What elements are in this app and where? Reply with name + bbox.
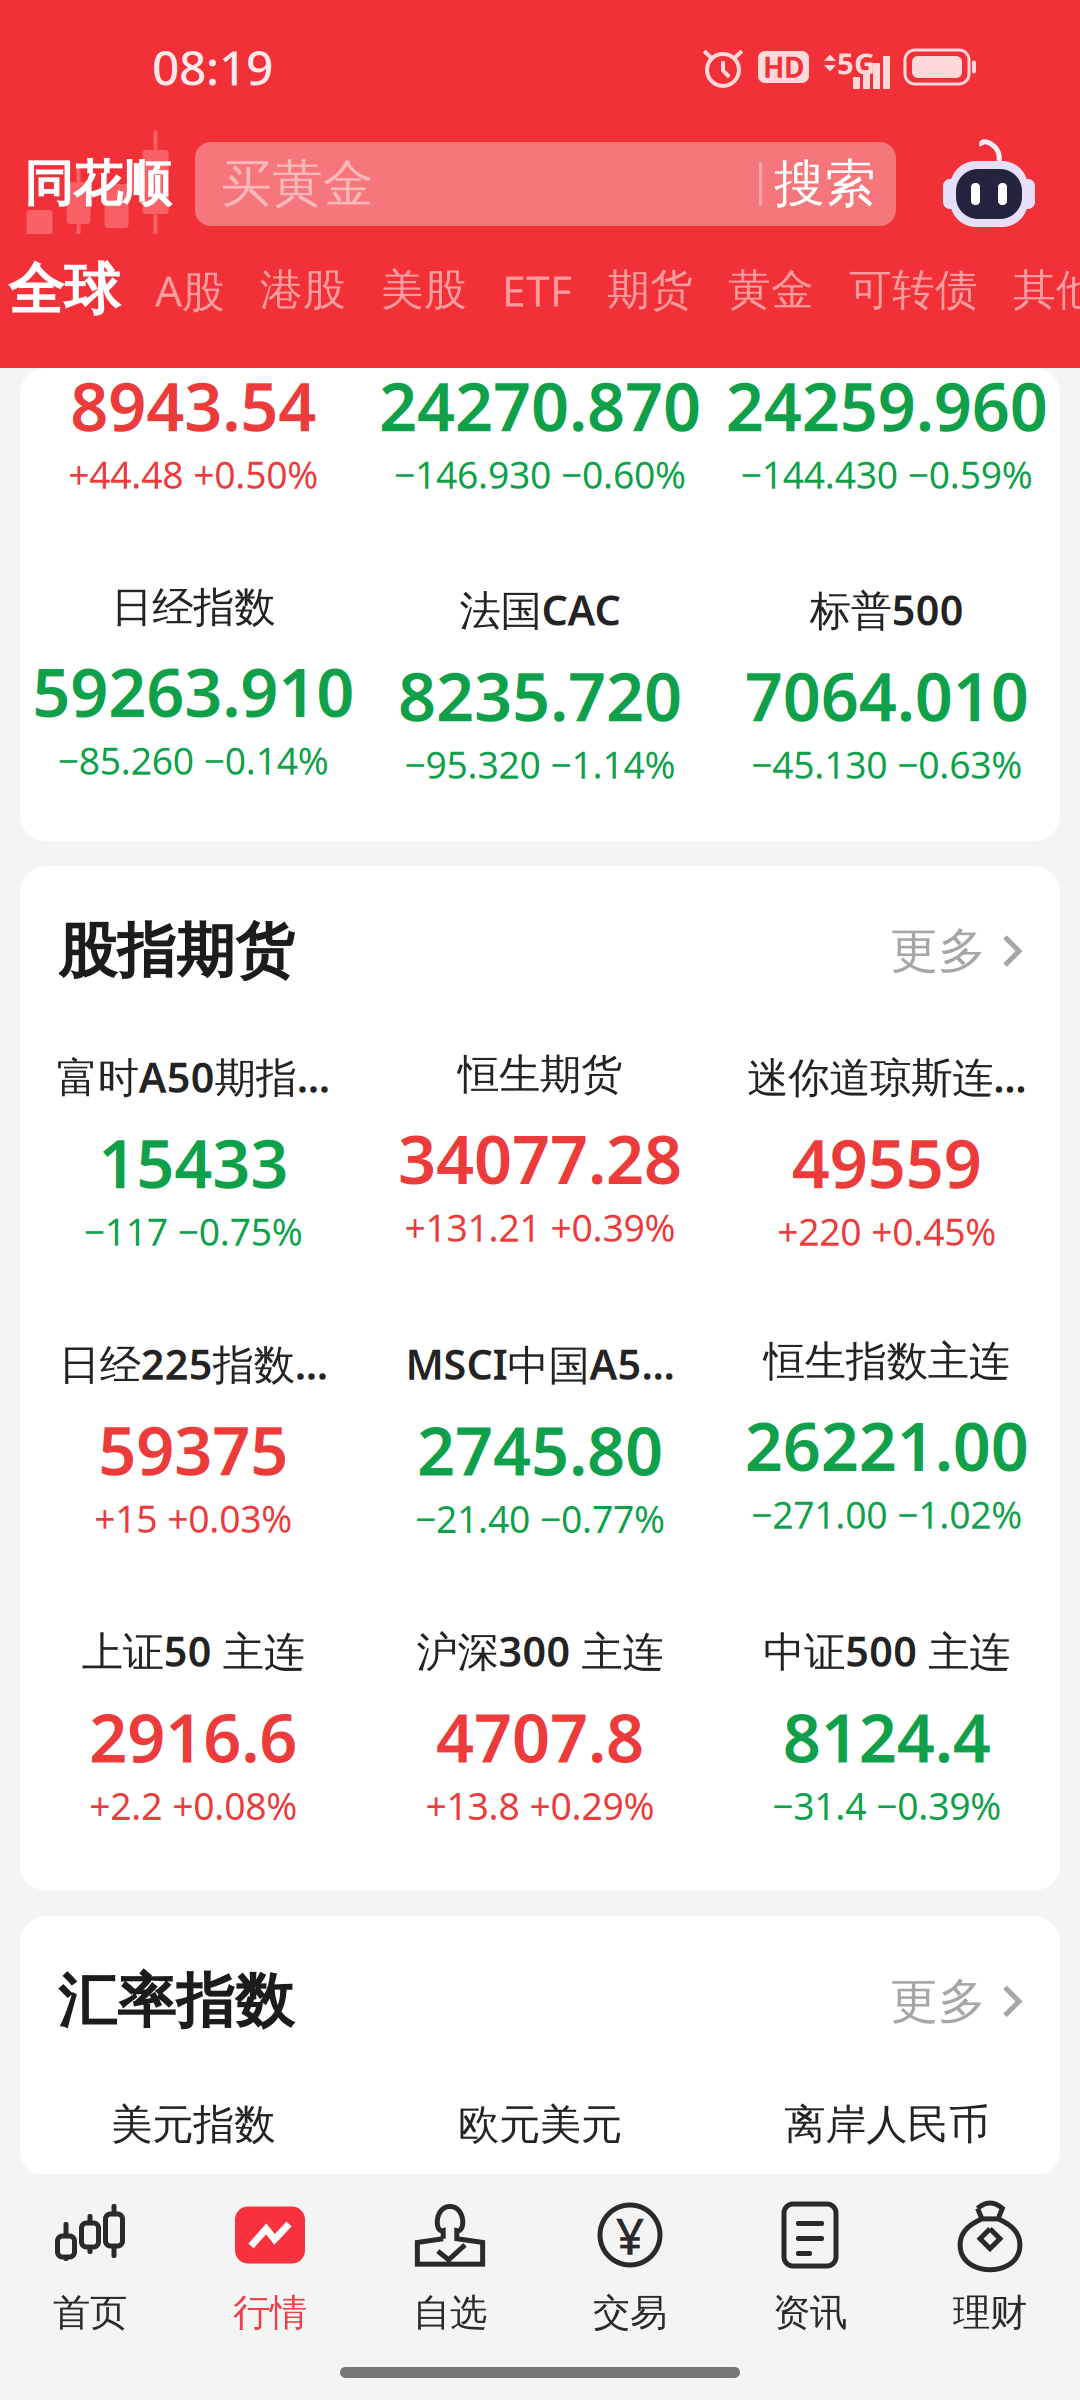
staticText: 离岸人民币 [784, 2099, 989, 2150]
button[interactable]: 买黄金 [195, 142, 896, 226]
staticText: −117 −0.75% [84, 1207, 303, 1256]
staticText: −31.4 −0.39% [772, 1781, 1001, 1830]
staticText: 08:19 [152, 35, 273, 99]
button[interactable]: 恒生期货 [367, 1049, 713, 1252]
staticText: 交易 [593, 2290, 667, 2336]
staticText: 上证50 主连 [82, 1623, 305, 1678]
button[interactable]: 首页 [0, 2204, 180, 2336]
staticText: +220 +0.45% [777, 1207, 996, 1256]
staticText: 沪深300 主连 [416, 1623, 663, 1678]
staticText: −146.930 −0.60% [394, 449, 686, 499]
button[interactable]: 沪深300 主连 [367, 1623, 713, 1830]
staticText: +13.8 +0.29% [425, 1781, 654, 1830]
staticText: −95.320 −1.14% [404, 739, 675, 789]
staticText: 日经225指数... [59, 1336, 328, 1391]
button[interactable]: 美股 [346, 264, 467, 316]
button[interactable]: 港股 [225, 264, 346, 316]
staticText: 4707.8 [436, 1692, 644, 1781]
staticText: 美元指数 [111, 2099, 275, 2150]
staticText: 34077.28 [398, 1114, 682, 1202]
staticText: 59375 [98, 1405, 288, 1493]
button[interactable]: ETF [467, 262, 572, 318]
staticText: ¥ [615, 2201, 644, 2269]
staticText: 搜索 [774, 153, 876, 215]
button[interactable]: 可转债 [814, 264, 978, 316]
staticText: 26221.00 [745, 1401, 1029, 1489]
staticText: 全球 [8, 256, 120, 324]
staticText: 首页 [53, 2290, 127, 2336]
staticText: ETF [502, 262, 572, 318]
staticText: 买黄金 [221, 153, 374, 215]
button[interactable]: 迷你道琼斯连... [713, 1049, 1060, 1256]
staticText: 法国CAC [459, 582, 620, 637]
staticText: 标普500 [810, 582, 964, 637]
staticText: 恒生指数主连 [764, 1336, 1010, 1387]
staticText: 5G [837, 43, 875, 82]
button[interactable]: 全球 [8, 256, 120, 324]
button[interactable]: 法国CAC [367, 582, 713, 789]
staticText: 同花顺 [24, 154, 171, 214]
button[interactable]: 欧元美元 [367, 2099, 713, 2150]
button[interactable]: 更多 [890, 922, 1022, 981]
staticText: +131.21 +0.39% [404, 1202, 675, 1252]
staticText: 恒生期货 [458, 1049, 622, 1100]
button[interactable]: 恒生指数主连 [713, 1336, 1060, 1539]
staticText: 理财 [953, 2290, 1027, 2336]
staticText: 行情 [233, 2290, 307, 2336]
staticText: MSCI中国A5... [405, 1336, 674, 1391]
button[interactable]: 24259.960 [713, 361, 1060, 499]
button[interactable]: 其他 [978, 264, 1080, 316]
staticText: 更多 [890, 1972, 986, 2031]
staticText: 港股 [260, 264, 346, 316]
button[interactable]: 智能助手 [943, 139, 1035, 229]
staticText: 中证500 主连 [763, 1623, 1010, 1678]
staticText: 2916.6 [89, 1692, 297, 1781]
staticText: +44.48 +0.50% [68, 449, 318, 499]
staticText: 欧元美元 [458, 2099, 622, 2150]
button[interactable]: 中证500 主连 [713, 1623, 1060, 1830]
button[interactable]: 资讯 [720, 2204, 900, 2336]
button[interactable]: 8943.54 [20, 361, 367, 499]
button[interactable]: 期货 [572, 264, 693, 316]
button[interactable]: 自选 [360, 2204, 540, 2336]
staticText: 资讯 [773, 2290, 847, 2336]
button[interactable]: ¥ [540, 2204, 720, 2336]
button[interactable]: 标普500 [713, 582, 1060, 789]
button[interactable]: 24270.870 [367, 361, 713, 499]
staticText: 49559 [792, 1118, 982, 1206]
staticText: −45.130 −0.63% [751, 739, 1022, 789]
staticText: −271.00 −1.02% [751, 1489, 1022, 1539]
button[interactable]: 黄金 [693, 264, 814, 316]
staticText: 2745.80 [417, 1405, 663, 1494]
staticText: +15 +0.03% [94, 1494, 292, 1543]
button[interactable]: 上证50 主连 [20, 1623, 367, 1830]
button[interactable]: 日经指数 [20, 582, 367, 785]
button[interactable]: 更多 [890, 1972, 1022, 2031]
button[interactable]: A股 [120, 262, 225, 318]
staticText: 迷你道琼斯连... [747, 1049, 1026, 1104]
staticText: 可转债 [849, 264, 978, 316]
staticText: 富时A50期指... [57, 1049, 330, 1104]
staticText: +2.2 +0.08% [89, 1781, 297, 1830]
button[interactable]: 理财 [900, 2204, 1080, 2336]
staticText: 股指期货 [58, 915, 294, 987]
staticText: 其他 [1013, 264, 1080, 316]
button[interactable]: 离岸人民币 [713, 2099, 1060, 2150]
staticText: 日经指数 [111, 582, 275, 633]
staticText: −85.260 −0.14% [58, 735, 329, 785]
staticText: 8124.4 [783, 1692, 991, 1781]
staticText: 期货 [607, 264, 693, 316]
button[interactable]: MSCI中国A5... [367, 1336, 713, 1543]
staticText: −21.40 −0.77% [415, 1494, 665, 1543]
staticText: 24270.870 [379, 361, 701, 449]
button[interactable]: 美元指数 [20, 2099, 367, 2150]
staticText: 8235.720 [398, 651, 682, 739]
staticText: 8943.54 [70, 361, 316, 449]
staticText: 自选 [413, 2290, 487, 2336]
staticText: 黄金 [728, 264, 814, 316]
button[interactable]: 行情 [180, 2204, 360, 2336]
staticText: HD [763, 48, 804, 86]
button[interactable]: 富时A50期指... [20, 1049, 367, 1256]
staticText: 汇率指数 [58, 1965, 294, 2037]
button[interactable]: 日经225指数... [20, 1336, 367, 1543]
